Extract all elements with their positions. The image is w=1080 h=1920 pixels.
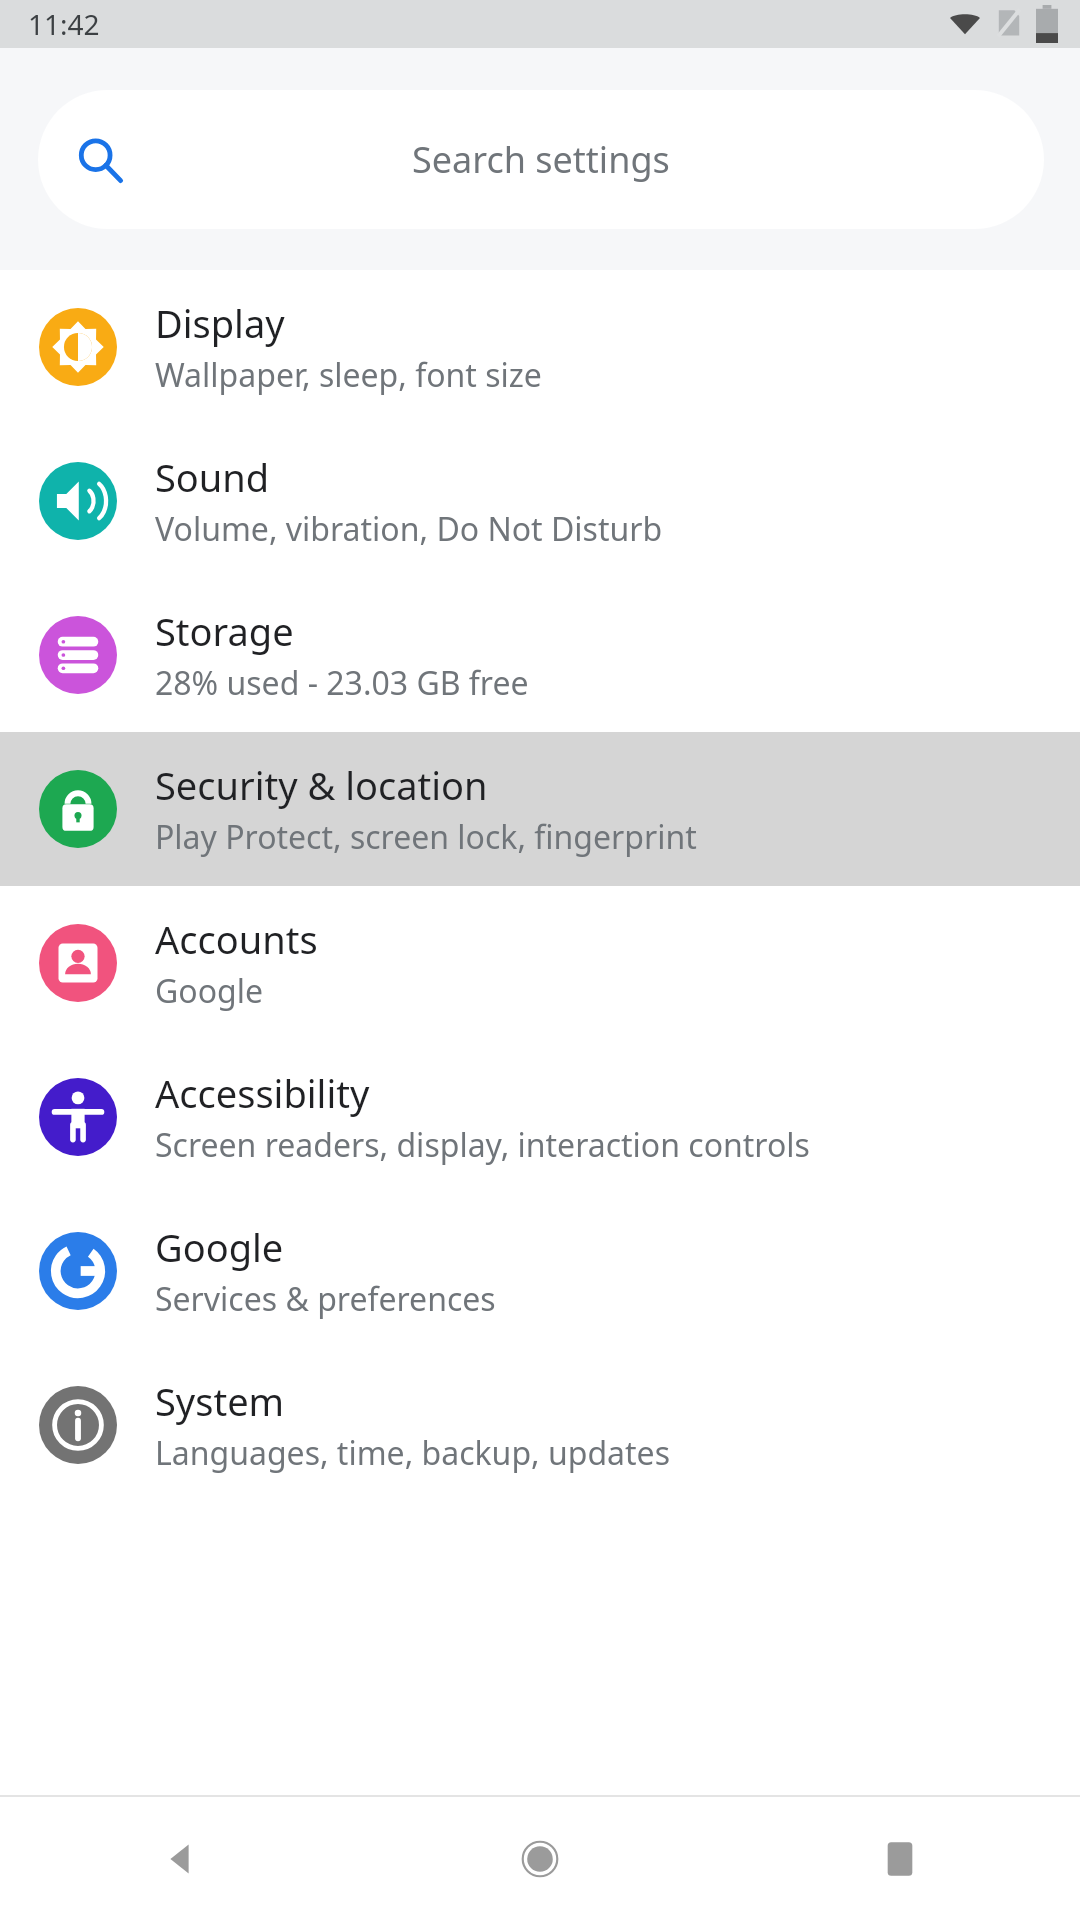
button[interactable]: Accessibility — [0, 1040, 1080, 1194]
button[interactable]: Storage — [0, 578, 1080, 732]
staticText: System — [155, 1375, 285, 1427]
button[interactable]: Home — [494, 1813, 586, 1905]
staticText: Accessibility — [155, 1067, 370, 1119]
button[interactable]: Sound — [0, 424, 1080, 578]
button[interactable]: Search settings — [38, 90, 1044, 229]
staticText: Services & preferences — [155, 1277, 496, 1321]
staticText: 28% used - 23.03 GB free — [155, 661, 529, 705]
staticText: Search settings — [412, 135, 670, 184]
staticText: Accounts — [155, 913, 318, 965]
button[interactable]: Recent apps — [854, 1813, 946, 1905]
staticText: 11:42 — [28, 5, 100, 43]
staticText: Google — [155, 1221, 284, 1273]
button[interactable]: System — [0, 1348, 1080, 1502]
button[interactable]: Security & location — [0, 732, 1080, 886]
staticText: Google — [155, 969, 264, 1013]
staticText: Play Protect, screen lock, fingerprint — [155, 815, 697, 859]
staticText: Wallpaper, sleep, font size — [155, 353, 542, 397]
staticText: Display — [155, 297, 285, 349]
button[interactable]: Google — [0, 1194, 1080, 1348]
staticText: Storage — [155, 605, 294, 657]
staticText: Sound — [155, 451, 270, 503]
staticText: Screen readers, display, interaction con… — [155, 1123, 810, 1167]
staticText: Security & location — [155, 759, 488, 811]
button[interactable]: Display — [0, 270, 1080, 424]
button[interactable]: Back — [134, 1813, 226, 1905]
button[interactable]: Accounts — [0, 886, 1080, 1040]
staticText: Languages, time, backup, updates — [155, 1431, 670, 1475]
staticText: Volume, vibration, Do Not Disturb — [155, 507, 663, 551]
